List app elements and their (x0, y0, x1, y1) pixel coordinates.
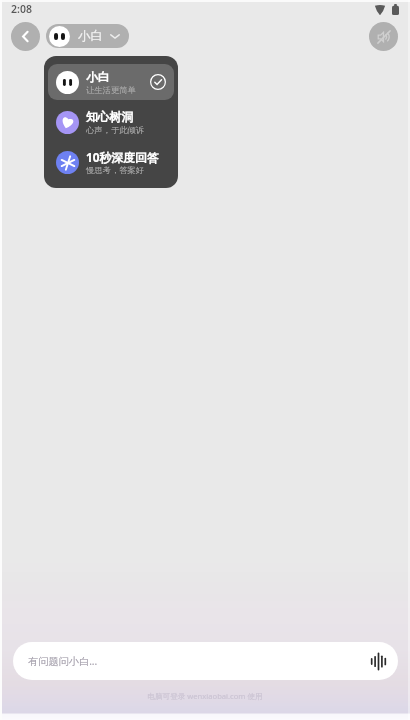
staticText: 小白 (78, 28, 103, 44)
staticText: 有问题问小白... (28, 654, 366, 668)
staticText: 电脑可登录 wenxiaobai.com 使用 (0, 691, 410, 701)
button[interactable]: 有问题问小白... (13, 642, 398, 680)
staticText: 让生活更简单 (86, 85, 136, 95)
button[interactable]: Voice input (366, 649, 390, 673)
button[interactable]: 知心树洞 (48, 104, 174, 140)
staticText: 知心树洞 (86, 110, 134, 125)
staticText: 2:08 (11, 2, 32, 16)
button[interactable]: 小白 (46, 24, 129, 48)
staticText: 小白 (86, 70, 110, 85)
button[interactable]: Mute (369, 22, 398, 51)
staticText: 慢思考，答案好 (86, 165, 145, 175)
staticText: 心声，于此倾诉 (86, 125, 145, 135)
button[interactable]: 10秒深度回答 (48, 144, 174, 180)
button[interactable]: 小白 (48, 64, 174, 100)
staticText: 10秒深度回答 (86, 149, 159, 165)
button[interactable]: Back (11, 22, 40, 51)
